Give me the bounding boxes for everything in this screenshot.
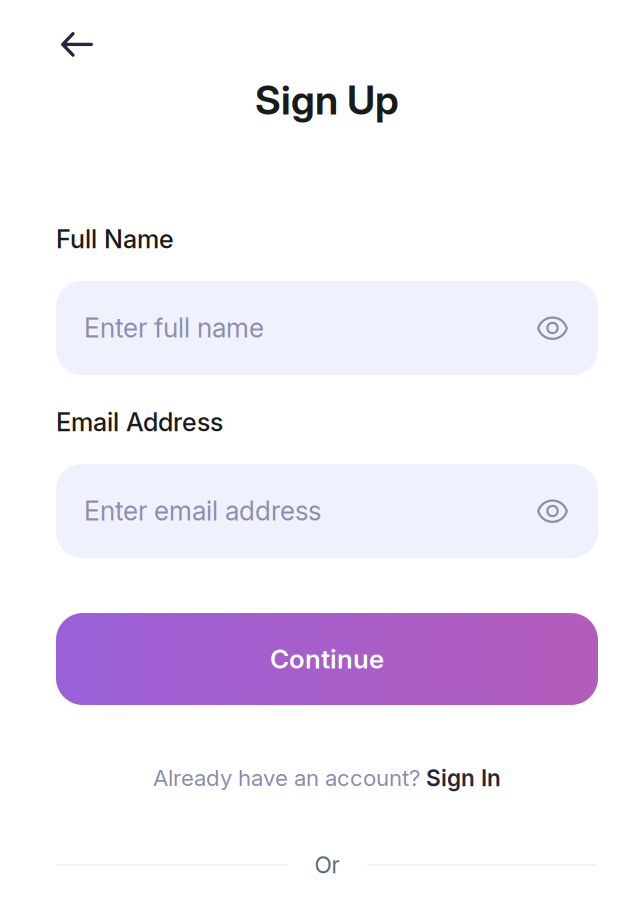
staticText: Continue — [270, 643, 384, 675]
staticText: Sign Up — [255, 76, 399, 124]
staticText: Sign In — [426, 764, 501, 792]
staticText: Email Address — [56, 407, 223, 437]
button[interactable]: Back — [56, 22, 106, 69]
staticText: Or — [314, 851, 339, 879]
staticText: Already have an account? — [153, 764, 426, 791]
button[interactable]: Already have an account? — [56, 762, 598, 794]
button[interactable]: Enter email address — [56, 464, 598, 558]
staticText: Enter email address — [84, 495, 321, 527]
staticText: Enter full name — [84, 312, 264, 344]
button[interactable]: Enter full name — [56, 281, 598, 375]
staticText: Full Name — [56, 224, 174, 254]
button[interactable]: Continue — [56, 613, 598, 705]
